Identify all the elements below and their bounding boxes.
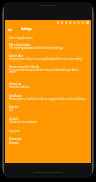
staticText: Subscribe	[9, 137, 22, 141]
staticText: Can you attend me or share it to your fr…	[9, 68, 83, 74]
staticText: Version	[9, 105, 19, 109]
staticText: About Application	[9, 36, 33, 40]
staticText: Settings	[21, 27, 32, 31]
staticText: Recommend to friends	[9, 65, 39, 69]
button[interactable]: About us	[5, 82, 91, 89]
button[interactable]: Version	[5, 105, 91, 112]
staticText: Update	[9, 117, 19, 121]
staticText: Please give us feedback and we suggest w…	[9, 97, 87, 101]
button[interactable]: Subscribe	[5, 137, 91, 141]
staticText: Donate	[9, 141, 19, 145]
staticText: Feedback	[9, 94, 22, 98]
staticText: 2.0	[9, 108, 87, 112]
button[interactable]: Update	[5, 117, 91, 124]
staticText: Support	[9, 129, 20, 133]
button[interactable]: Feedback	[5, 94, 91, 101]
staticText: Do you have a favor to our application? …	[9, 57, 87, 61]
button[interactable]: Rate 5 Star	[5, 54, 91, 61]
staticText: Mine Application	[9, 43, 32, 47]
button[interactable]: Mine Application	[5, 43, 91, 50]
button[interactable]: Recommend to friends	[5, 65, 91, 72]
button[interactable]: Back	[6, 26, 14, 34]
staticText: Here the Authors	[9, 85, 87, 89]
staticText: Check for new updates	[9, 120, 87, 124]
staticText: Get more application that liked family t…	[9, 46, 71, 50]
button[interactable]: Donate	[5, 141, 91, 145]
staticText: About us	[9, 82, 21, 86]
staticText: Rate 5 Star	[9, 54, 24, 58]
